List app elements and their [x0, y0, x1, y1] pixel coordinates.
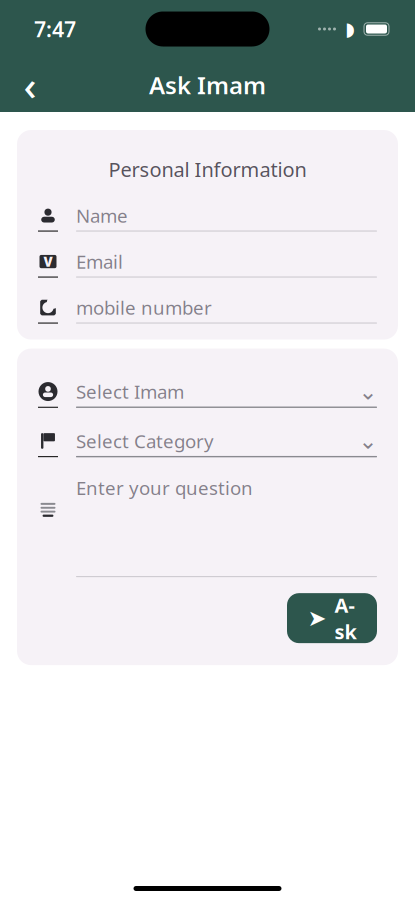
staticText: Select Imam	[76, 379, 184, 404]
staticText: ◗	[345, 18, 355, 40]
staticText: Email	[76, 249, 123, 274]
staticText: Ask	[334, 592, 356, 645]
staticText: 7:47	[34, 15, 76, 43]
staticText: ‹	[23, 58, 36, 111]
staticText: Personal Information	[108, 156, 306, 183]
staticText: Enter your question	[76, 475, 253, 500]
staticText: V	[43, 253, 52, 270]
staticText: ➤	[307, 605, 326, 631]
button[interactable]: Back	[8, 63, 52, 107]
staticText: ⌄	[358, 379, 377, 404]
staticText: mobile number	[76, 295, 212, 320]
staticText: ⌄	[358, 428, 377, 454]
button[interactable]: ➤	[287, 593, 377, 643]
staticText: Ask Imam	[149, 69, 266, 101]
staticText: Select Category	[76, 429, 214, 453]
staticText: Name	[76, 203, 128, 228]
